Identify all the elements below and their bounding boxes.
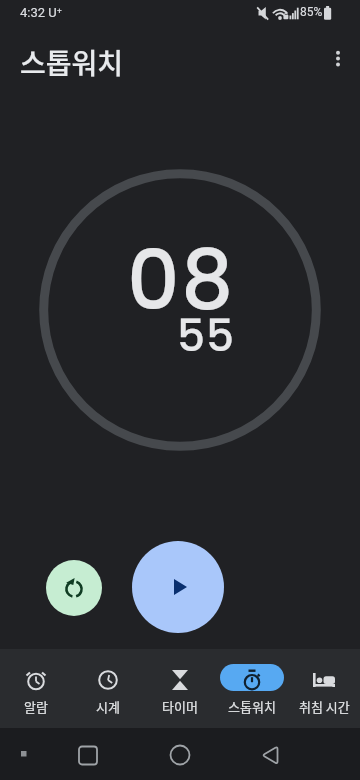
button[interactable] xyxy=(132,541,224,633)
button[interactable] xyxy=(64,732,112,776)
staticText: 스톱워치 xyxy=(228,697,276,716)
button[interactable]: 스톱워치 xyxy=(216,649,288,728)
staticText: 4:32 U⁺ xyxy=(20,5,62,20)
staticText: 취침 시간 xyxy=(299,697,350,716)
staticText: 타이머 xyxy=(162,697,198,716)
button[interactable] xyxy=(246,732,294,776)
button[interactable]: 타이머 xyxy=(144,649,216,728)
staticText: 08 xyxy=(127,223,235,338)
button[interactable] xyxy=(156,732,204,776)
staticText: 스톱워치 xyxy=(20,42,124,83)
button[interactable] xyxy=(46,560,102,616)
button[interactable]: 취침 시간 xyxy=(288,649,360,728)
button[interactable]: 알람 xyxy=(0,649,72,728)
staticText: 55 xyxy=(177,305,235,367)
button[interactable]: 시계 xyxy=(72,649,144,728)
staticText: 알람 xyxy=(24,697,48,716)
staticText: 시계 xyxy=(96,697,120,716)
staticText: 85% xyxy=(300,5,323,19)
button[interactable] xyxy=(326,46,350,70)
